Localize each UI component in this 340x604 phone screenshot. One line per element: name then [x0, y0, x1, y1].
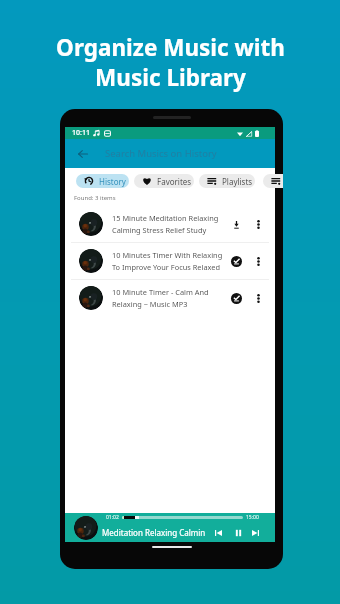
button[interactable]: Favorites	[134, 174, 194, 188]
button[interactable]: History	[76, 174, 129, 188]
staticText: 15 Minute Meditation Relaxing	[112, 213, 219, 223]
button[interactable]: Downloaded	[227, 283, 245, 313]
staticText: Favorites	[157, 176, 192, 187]
button[interactable]: Downloaded	[227, 246, 245, 276]
button[interactable]: Playlists	[199, 174, 255, 188]
button[interactable]: Next	[248, 525, 263, 540]
staticText: Music Library	[95, 62, 246, 93]
button[interactable]: More options	[251, 246, 265, 276]
staticText: 10 Minute Timer - Calm And	[112, 287, 209, 297]
staticText: Search Musics on History	[105, 147, 217, 160]
staticText: Calming Stress Relief Study	[112, 225, 207, 235]
staticText: Found: 3 items	[74, 194, 116, 202]
button[interactable]: More options	[251, 209, 265, 239]
staticText: Relaxing ~ Music MP3	[112, 299, 188, 309]
button[interactable]: 10 Minute Timer - Calm And	[71, 280, 269, 316]
button[interactable]: Back	[69, 139, 97, 168]
staticText: Meditation Relaxing Calming S	[102, 527, 205, 538]
staticText: To Improve Your Focus Relaxed	[112, 262, 221, 272]
button[interactable]: Previous	[211, 525, 226, 540]
button[interactable]: Now playing artwork	[74, 516, 98, 540]
button[interactable]: More options	[251, 283, 265, 313]
staticText: 10 Minutes Timer With Relaxing	[112, 250, 223, 260]
button[interactable]: 15 Minute Meditation Relaxing	[71, 206, 269, 242]
staticText: Organize Music with	[56, 32, 285, 63]
staticText: 01:02	[106, 514, 119, 521]
button[interactable]: 10 Minutes Timer With Relaxing	[71, 243, 269, 279]
staticText: 10:11	[72, 128, 90, 138]
button[interactable]: Seek bar	[122, 516, 243, 519]
button[interactable]	[263, 174, 283, 188]
staticText: Playlists	[222, 176, 253, 187]
button[interactable]: Pause	[231, 525, 246, 540]
staticText: History	[99, 176, 126, 187]
staticText: 15:00	[246, 514, 259, 521]
button[interactable]: Download	[227, 209, 245, 239]
